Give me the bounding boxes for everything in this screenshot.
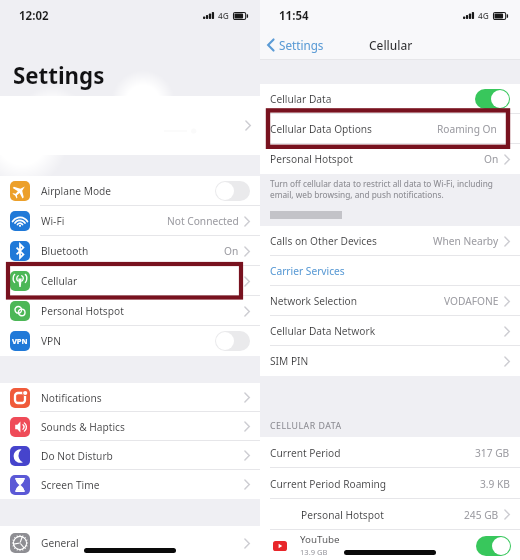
staticText: Turn off cellular data to restrict all d… [270,178,493,200]
staticText: General [41,536,79,550]
staticText: 13.9 GB [300,547,328,557]
staticText: Settings [13,60,105,90]
button[interactable]: Cellular Data [260,84,520,114]
staticText: When Nearby [433,234,499,248]
staticText: Current Period Roaming [270,477,387,491]
button[interactable]: Cellular Data Options [260,114,520,144]
button[interactable]: Toggle off [215,331,250,351]
button[interactable]: Do Not Disturb [0,441,260,470]
staticText: 4G [218,10,229,21]
button[interactable]: SIM PIN [260,346,520,376]
staticText: 245 GB [464,508,499,522]
button[interactable]: VPN [0,326,260,356]
button[interactable]: Notifications [0,383,260,412]
button[interactable]: Cellular Data Network [260,316,520,346]
staticText: Personal Hotspot [301,508,384,522]
staticText: Personal Hotspot [41,304,124,318]
staticText: VODAFONE [444,294,499,308]
button[interactable]: Toggle on [475,89,510,109]
button[interactable]: YouTube [260,530,520,560]
staticText: Do Not Disturb [41,449,113,463]
button[interactable]: Toggle on [476,536,511,556]
staticText: Network Selection [270,294,358,308]
staticText: On [224,244,239,258]
staticText: Calls on Other Devices [270,234,377,248]
staticText: Carrier Services [270,264,345,278]
staticText: 4G [478,10,489,21]
button[interactable]: General [0,526,260,560]
button[interactable]: Bluetooth [0,236,260,266]
button[interactable]: Sounds & Haptics [0,412,260,441]
button[interactable]: Personal Hotspot [260,144,520,174]
staticText: Cellular [41,274,78,288]
button[interactable]: Screen Time [0,470,260,499]
staticText: Cellular Data Network [270,324,376,338]
button[interactable]: Current Period Roaming [260,468,520,499]
button[interactable]: Calls on Other Devices [260,226,520,256]
staticText: VPN [41,334,62,348]
staticText: Cellular Data [270,92,332,106]
button[interactable]: Wi-Fi [0,206,260,236]
staticText: Cellular Data Options [270,122,372,136]
button[interactable]: Cellular [0,266,260,296]
staticText: Not Connected [167,214,239,228]
staticText: Cellular [369,37,413,53]
staticText: 12:02 [19,8,49,24]
staticText: 11:54 [279,8,309,24]
staticText: Roaming On [437,122,497,136]
button[interactable]: Carrier Services [260,256,520,286]
button[interactable]: Current Period [260,437,520,468]
staticText: 3.9 KB [480,477,510,491]
staticText: VPN [12,336,28,346]
staticText: SIM PIN [270,354,309,368]
staticText: YouTube [300,533,340,546]
staticText: 317 GB [475,446,510,460]
staticText: Notifications [41,391,102,405]
staticText: Settings [279,37,324,53]
button[interactable]: Settings [267,37,324,53]
button[interactable]: Toggle off [215,181,250,201]
staticText: Current Period [270,446,341,460]
staticText: On [484,152,499,166]
staticText: Wi-Fi [41,214,65,228]
button[interactable]: Personal Hotspot [260,499,520,530]
button[interactable]: Network Selection [260,286,520,316]
staticText: CELLULAR DATA [270,420,342,432]
button[interactable]: Airplane Mode [0,176,260,206]
staticText: Airplane Mode [41,184,112,198]
staticText: Personal Hotspot [270,152,353,166]
staticText: Sounds & Haptics [41,420,125,434]
staticText: Screen Time [41,478,100,492]
button[interactable]: Personal Hotspot [0,296,260,326]
staticText: Bluetooth [41,244,89,258]
